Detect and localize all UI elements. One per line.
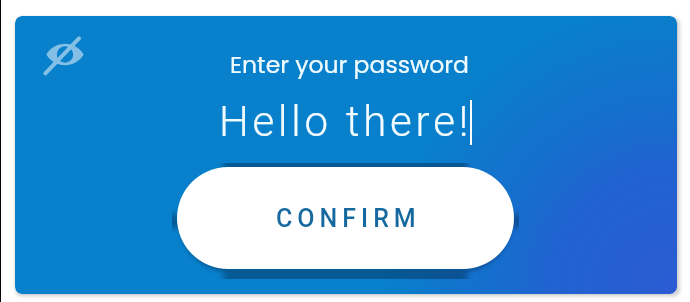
button[interactable]: Toggle password visibility [30,19,100,91]
staticText: Enter your password [230,48,469,81]
staticText: CONFIRM [276,204,421,233]
staticText: Hello there! [219,97,472,146]
button[interactable]: CONFIRM [177,167,514,269]
